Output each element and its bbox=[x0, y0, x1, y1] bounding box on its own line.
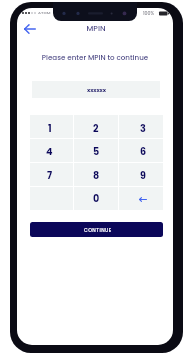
button[interactable]: 6 bbox=[119, 139, 163, 162]
staticText: 0 bbox=[93, 192, 100, 205]
button[interactable]: 3 bbox=[119, 115, 163, 138]
button[interactable]: Backspace bbox=[119, 187, 163, 210]
button[interactable]: 0 bbox=[74, 187, 118, 210]
staticText: 9 bbox=[140, 169, 146, 182]
staticText: 2 bbox=[93, 122, 99, 135]
staticText: Please enter MPIN to continue bbox=[17, 52, 173, 62]
staticText: CONTINUE bbox=[84, 227, 112, 234]
staticText: ATOM bbox=[38, 10, 51, 16]
button[interactable]: 4 bbox=[30, 139, 73, 162]
button[interactable]: 5 bbox=[74, 139, 118, 162]
button[interactable]: 2 bbox=[74, 115, 118, 138]
other: Backspace bbox=[136, 192, 150, 206]
button[interactable]: 1 bbox=[30, 115, 73, 138]
staticText: 100% bbox=[143, 10, 155, 16]
staticText: 3 bbox=[140, 122, 146, 135]
staticText: 7 bbox=[47, 169, 53, 182]
button[interactable]: CONTINUE bbox=[30, 222, 163, 237]
button[interactable]: xxxxxx bbox=[32, 81, 160, 98]
button[interactable]: 7 bbox=[30, 163, 73, 186]
staticText: xxxxxx bbox=[87, 86, 106, 94]
button[interactable]: 9 bbox=[119, 163, 163, 186]
staticText: 6 bbox=[140, 145, 147, 158]
button[interactable]: Back bbox=[20, 19, 40, 39]
staticText: 8 bbox=[93, 169, 100, 182]
staticText: MPIN bbox=[18, 23, 173, 34]
staticText: 1 bbox=[48, 122, 52, 135]
staticText: 4 bbox=[46, 145, 53, 158]
button[interactable]: 8 bbox=[74, 163, 118, 186]
staticText: 5 bbox=[93, 145, 100, 158]
